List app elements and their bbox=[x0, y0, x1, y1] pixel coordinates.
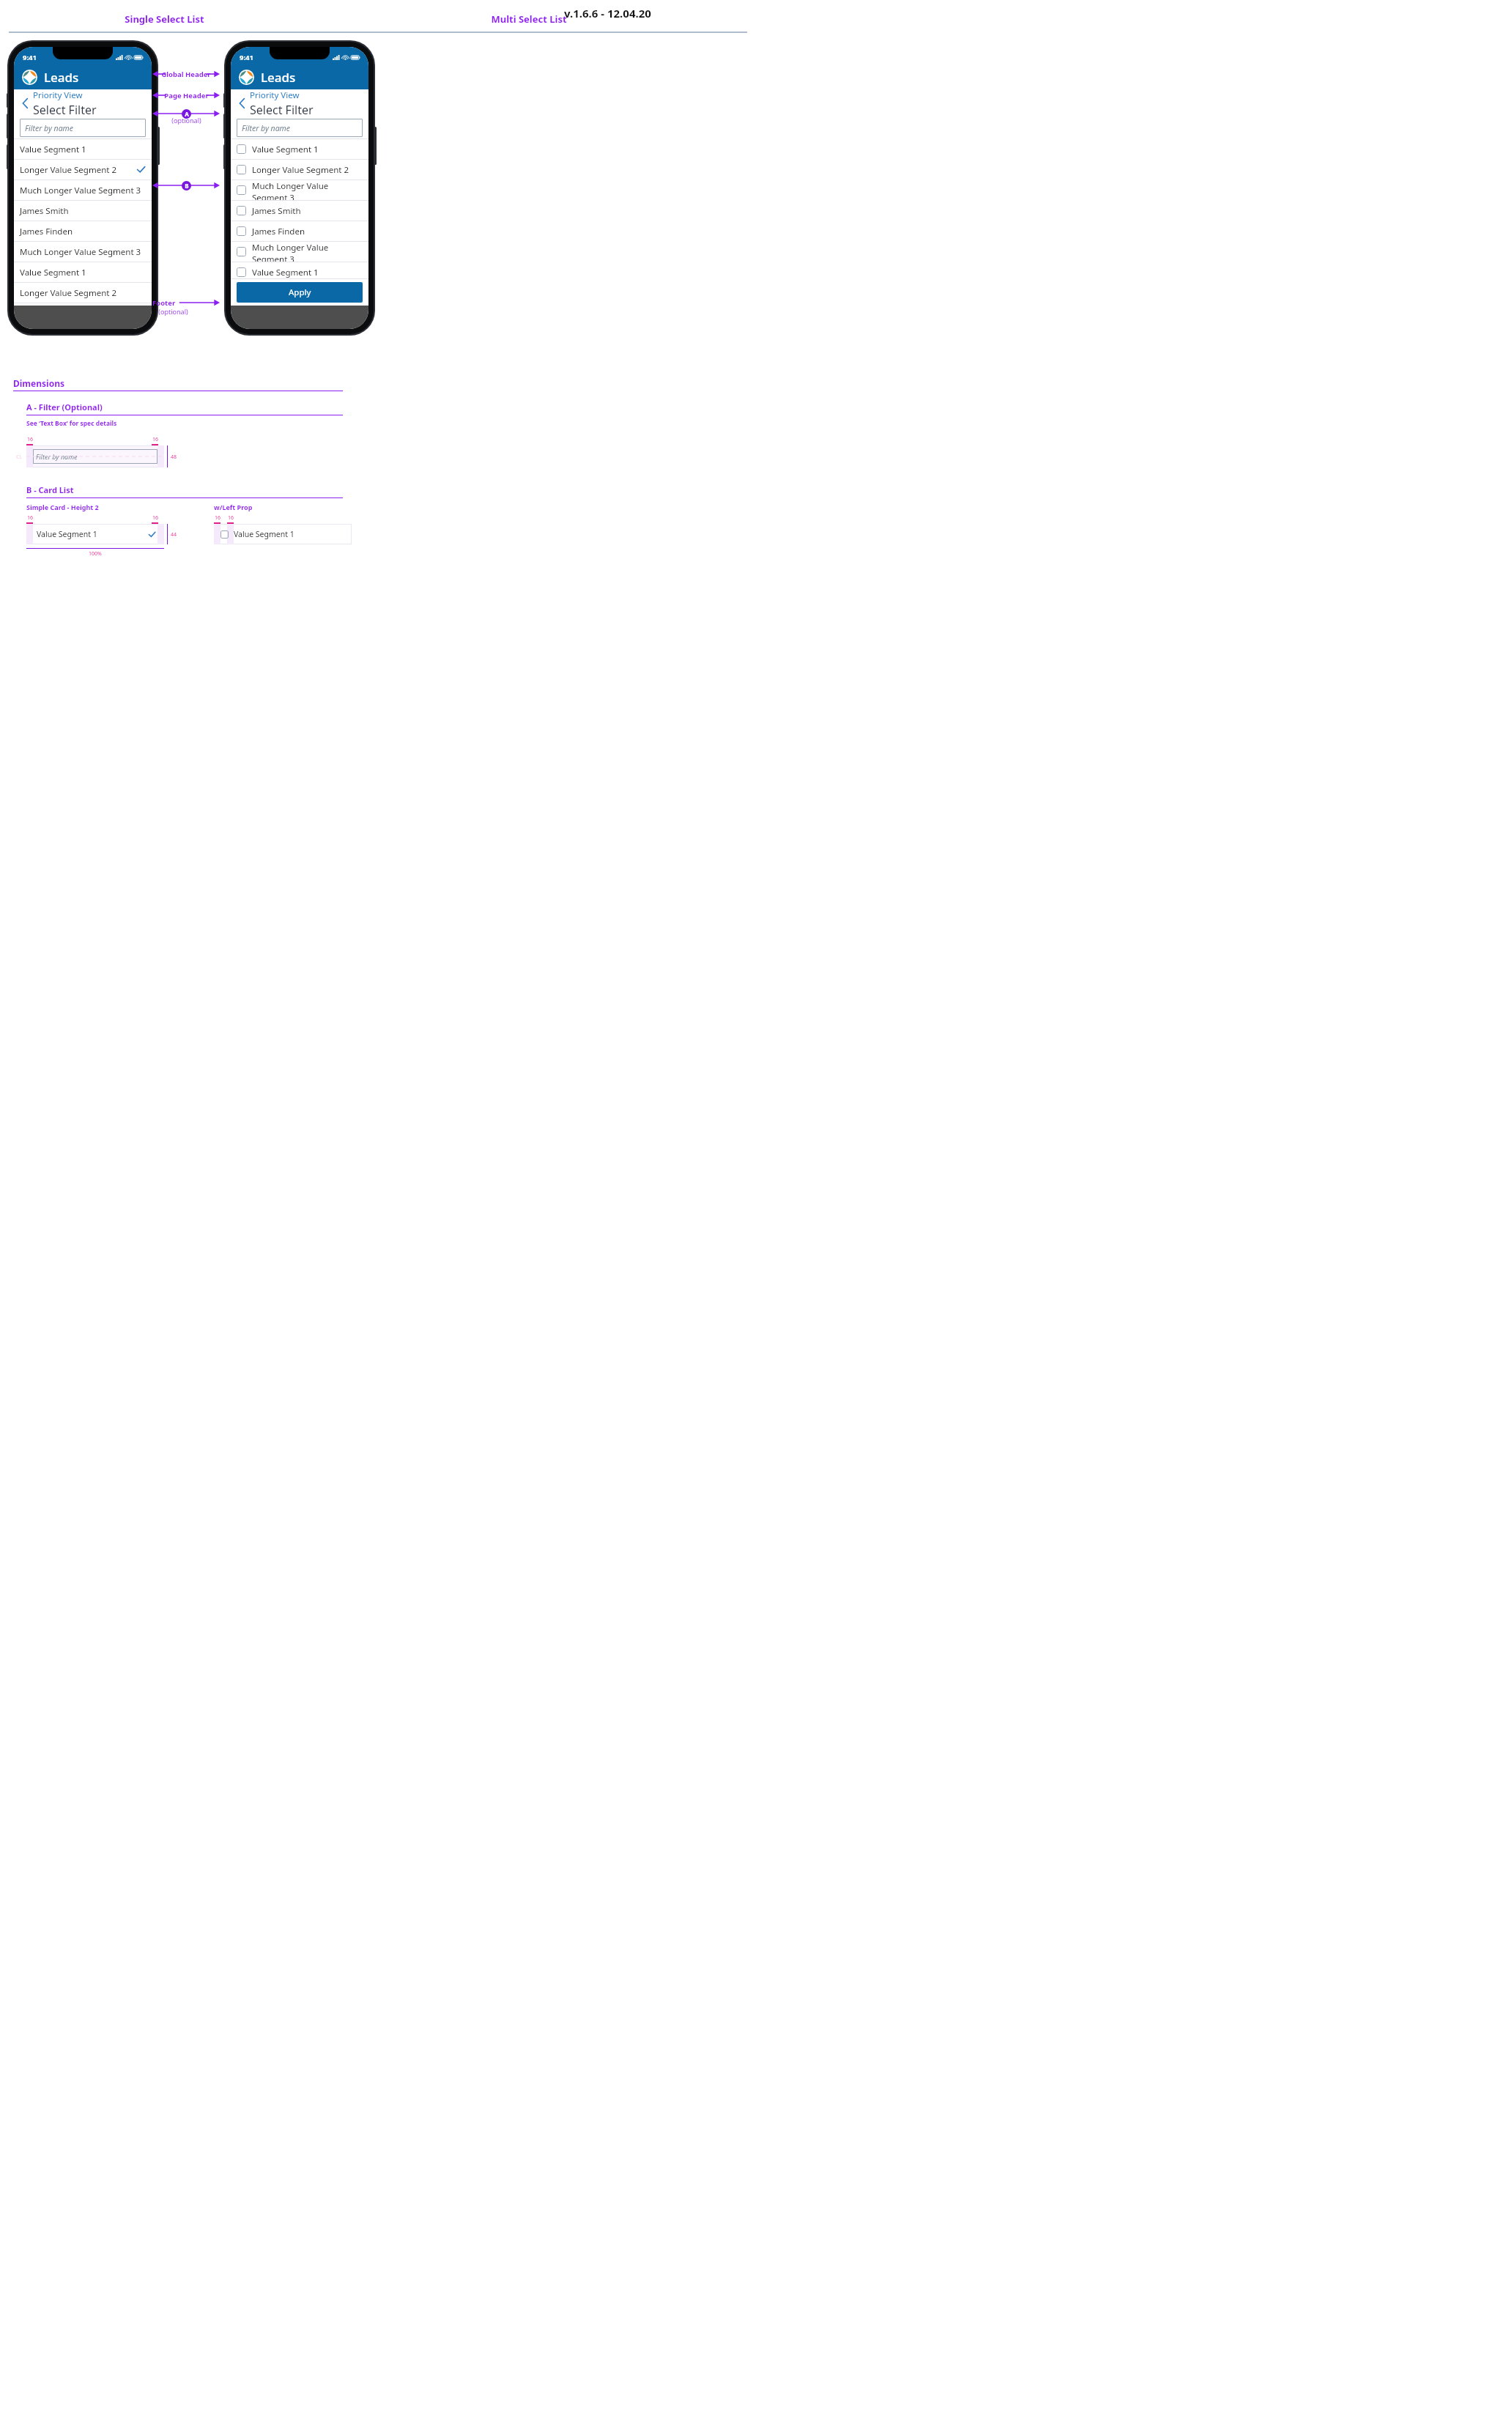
staticText: Global Header bbox=[161, 70, 211, 79]
staticText: Much Longer Value Segment 3 bbox=[20, 246, 146, 258]
other: Selected bbox=[148, 530, 156, 539]
staticText: Longer Value Segment 2 bbox=[20, 287, 146, 299]
staticText: Leads bbox=[261, 69, 296, 86]
button[interactable]: Filter by name bbox=[20, 119, 146, 137]
button[interactable]: James Finden bbox=[231, 221, 368, 241]
staticText: Much Longer Value Segment 3 bbox=[20, 185, 146, 196]
staticText: Value Segment 1 bbox=[234, 529, 294, 539]
button[interactable]: Value Segment 1 bbox=[231, 139, 368, 159]
staticText: Longer Value Segment 2 bbox=[252, 164, 363, 176]
staticText: Multi Select List bbox=[491, 12, 567, 26]
staticText: Page Header bbox=[164, 91, 209, 100]
staticText: CL bbox=[16, 454, 23, 461]
staticText: 44 bbox=[171, 531, 177, 539]
other: App logo bbox=[22, 70, 37, 85]
button[interactable]: Filter by name bbox=[237, 119, 363, 137]
button[interactable]: James Finden bbox=[14, 221, 152, 241]
button[interactable]: Much Longer Value Segment 3 bbox=[14, 242, 152, 262]
staticText: (optional) bbox=[158, 307, 188, 316]
button[interactable]: Back bbox=[231, 89, 368, 117]
button[interactable]: Value Segment 1 bbox=[220, 524, 352, 544]
button[interactable]: James Smith bbox=[231, 201, 368, 221]
staticText: Single Select List bbox=[125, 12, 204, 26]
button[interactable]: Value Segment 1 bbox=[231, 262, 368, 282]
staticText: Footer bbox=[152, 298, 176, 308]
staticText: Much Longer Value Segment 3 bbox=[252, 180, 363, 200]
staticText: 16 bbox=[27, 514, 34, 522]
button[interactable]: Back bbox=[14, 89, 152, 117]
staticText: 16 bbox=[152, 436, 159, 443]
button[interactable]: James Jordan bbox=[14, 303, 152, 306]
button[interactable]: Apply bbox=[237, 282, 363, 303]
staticText: Value Segment 1 bbox=[20, 267, 146, 278]
staticText: B - Card List bbox=[26, 484, 74, 495]
staticText: Select Filter bbox=[250, 102, 314, 117]
other: Selected bbox=[136, 165, 146, 174]
staticText: 16 bbox=[228, 514, 234, 522]
button[interactable]: App logo bbox=[231, 64, 368, 89]
staticText: James Smith bbox=[20, 205, 146, 217]
staticText: Simple Card - Height 2 bbox=[26, 503, 99, 511]
button[interactable]: Much Longer Value Segment 3 bbox=[14, 180, 152, 200]
button[interactable]: James Smith bbox=[14, 201, 152, 221]
button[interactable]: Value Segment 1 bbox=[14, 139, 152, 159]
staticText: Apply bbox=[289, 286, 311, 298]
staticText: James Finden bbox=[20, 226, 146, 237]
staticText: v.1.6.6 - 12.04.20 bbox=[564, 6, 651, 21]
staticText: Dimensions bbox=[13, 377, 64, 389]
staticText: 16 bbox=[215, 514, 221, 522]
staticText: 16 bbox=[152, 514, 159, 522]
staticText: Filter by name bbox=[25, 123, 74, 133]
staticText: w/Left Prop bbox=[214, 503, 253, 511]
button[interactable]: App logo bbox=[14, 64, 152, 89]
staticText: 100% bbox=[89, 550, 102, 558]
button[interactable]: Much Longer Value Segment 3 bbox=[231, 242, 368, 262]
staticText: Filter by name bbox=[36, 452, 78, 461]
other: Back bbox=[237, 96, 247, 111]
staticText: See ‘Text Box’ for spec details bbox=[26, 419, 117, 428]
button[interactable]: Longer Value Segment 2 bbox=[231, 283, 368, 303]
staticText: Longer Value Segment 2 bbox=[252, 287, 363, 299]
button[interactable]: Longer Value Segment 2 bbox=[231, 160, 368, 180]
staticText: James Finden bbox=[252, 226, 363, 237]
button[interactable]: Longer Value Segment 2 bbox=[14, 283, 152, 303]
staticText: 9:41 bbox=[23, 53, 37, 62]
staticText: Filter by name bbox=[242, 123, 291, 133]
staticText: B bbox=[185, 182, 189, 190]
staticText: Priority View bbox=[33, 89, 83, 101]
staticText: Value Segment 1 bbox=[252, 144, 363, 155]
staticText: Value Segment 1 bbox=[20, 144, 146, 155]
staticText: James Smith bbox=[252, 205, 363, 217]
staticText: Longer Value Segment 2 bbox=[20, 164, 136, 176]
button[interactable]: Value Segment 1 bbox=[33, 524, 157, 544]
staticText: A bbox=[185, 110, 189, 118]
staticText: Much Longer Value Segment 3 bbox=[252, 242, 363, 262]
button[interactable]: Much Longer Value Segment 3 bbox=[231, 180, 368, 200]
staticText: 9:41 bbox=[240, 53, 253, 62]
staticText: 16 bbox=[27, 436, 34, 443]
staticText: Leads bbox=[44, 69, 79, 86]
staticText: A - Filter (Optional) bbox=[26, 402, 103, 413]
button[interactable]: Longer Value Segment 2 bbox=[14, 160, 152, 180]
button[interactable]: Value Segment 1 bbox=[14, 262, 152, 282]
staticText: (optional) bbox=[171, 116, 201, 125]
staticText: James Jordan bbox=[20, 303, 146, 306]
staticText: 48 bbox=[171, 454, 177, 461]
staticText: Select Filter bbox=[33, 102, 97, 117]
other: Back bbox=[21, 96, 30, 111]
other: App logo bbox=[239, 70, 254, 85]
staticText: Priority View bbox=[250, 89, 300, 101]
staticText: Value Segment 1 bbox=[37, 529, 148, 539]
staticText: Value Segment 1 bbox=[252, 267, 363, 278]
